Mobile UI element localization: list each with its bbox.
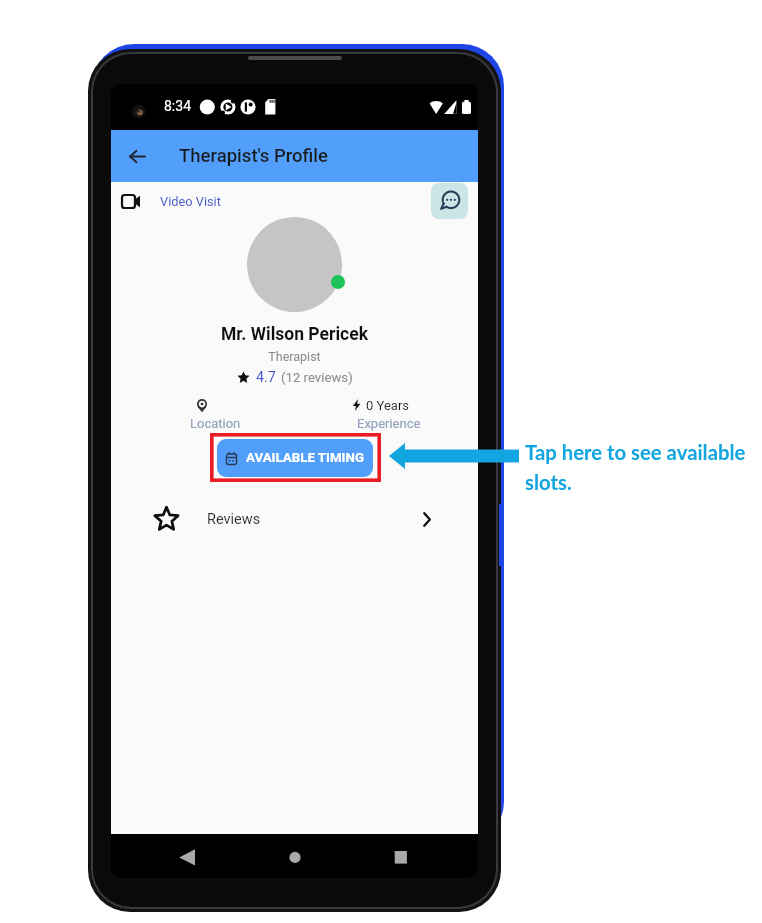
staticText: AVAILABLE TIMING — [246, 450, 364, 466]
staticText: Video Visit — [160, 194, 221, 209]
button[interactable]: Video Visit — [120, 194, 221, 209]
button[interactable]: Reviews — [111, 497, 478, 541]
staticText: (12 reviews) — [281, 370, 353, 385]
staticText: Tap here to see available slots. — [525, 440, 761, 494]
staticText: Mr. Wilson Pericek — [111, 324, 478, 345]
button[interactable]: Chat — [431, 183, 468, 219]
staticText: 4.7 — [256, 369, 276, 386]
staticText: Therapist — [111, 349, 478, 364]
staticText: 0 Years — [366, 398, 410, 413]
staticText: Reviews — [207, 511, 261, 528]
staticText: Experience — [357, 416, 421, 431]
staticText: Therapist's Profile — [179, 145, 328, 167]
button[interactable]: AVAILABLE TIMING — [217, 439, 373, 477]
staticText: 8:34 — [164, 98, 191, 114]
button[interactable]: Back — [115, 134, 159, 178]
staticText: Location — [190, 416, 241, 431]
